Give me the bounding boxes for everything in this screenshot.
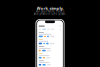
staticText: All your work, notes bbox=[36, 9, 64, 13]
staticText: and plans in one place. bbox=[33, 12, 66, 15]
staticText: Work, simply. bbox=[36, 6, 63, 11]
